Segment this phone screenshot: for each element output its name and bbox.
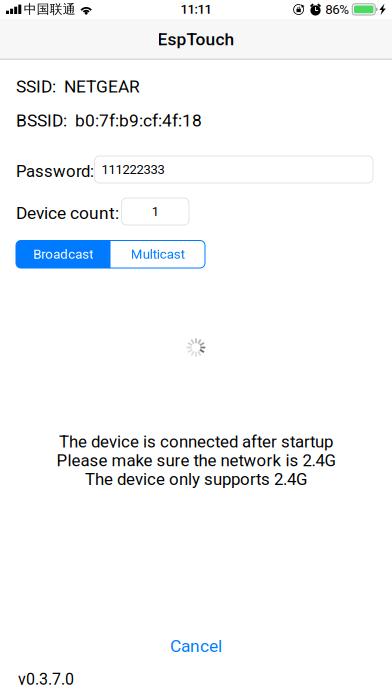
staticText: 86% — [325, 1, 349, 17]
staticText: v0.3.7.0 — [18, 670, 74, 689]
staticText: 111222333 — [101, 162, 164, 177]
staticText: BSSID: b0:7f:b9:cf:4f:18 — [16, 110, 202, 131]
staticText: 1 — [152, 204, 159, 219]
button[interactable]: Broadcast — [16, 240, 110, 268]
staticText: The device is connected after startup — [59, 432, 333, 452]
staticText: 中国联通 — [24, 1, 76, 17]
button[interactable]: 1 — [121, 198, 189, 225]
button[interactable]: 111222333 — [94, 156, 373, 183]
button[interactable]: Cancel — [0, 634, 392, 658]
button[interactable]: Multicast — [110, 240, 205, 268]
staticText: Multicast — [131, 246, 185, 262]
staticText: Please make sure the network is 2.4G — [56, 451, 335, 470]
staticText: The device only supports 2.4G — [85, 469, 307, 489]
staticText: Device count: — [16, 203, 119, 223]
staticText: Cancel — [170, 636, 222, 656]
staticText: Password: — [16, 161, 94, 181]
staticText: Broadcast — [33, 246, 93, 262]
staticText: SSID: NETGEAR — [16, 76, 140, 97]
staticText: EspTouch — [157, 29, 234, 49]
staticText: 11:11 — [180, 2, 211, 17]
